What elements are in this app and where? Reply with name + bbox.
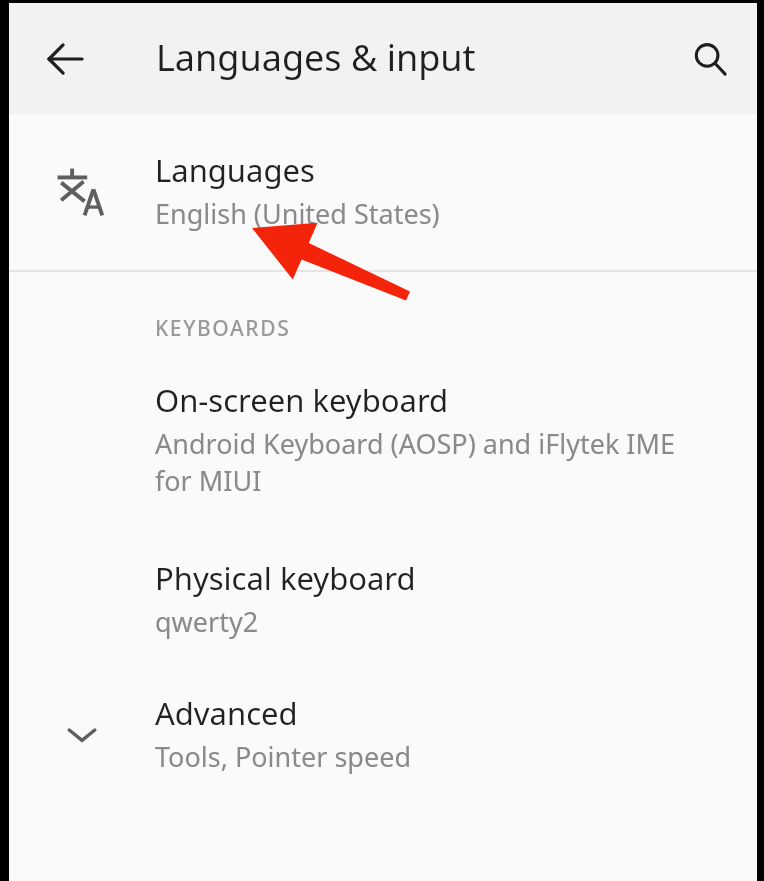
staticText: English (United States) — [155, 195, 440, 232]
staticText: Advanced — [155, 692, 298, 734]
button[interactable]: Back — [29, 23, 101, 95]
staticText: On-screen keyboard — [155, 379, 449, 421]
button[interactable]: Advanced — [9, 692, 757, 775]
staticText: Tools, Pointer speed — [155, 738, 412, 775]
button[interactable]: Languages — [9, 114, 757, 270]
staticText: Physical keyboard — [155, 557, 416, 599]
staticText: qwerty2 — [155, 603, 259, 640]
button[interactable]: Search — [677, 26, 743, 92]
staticText: Languages & input — [156, 33, 476, 82]
button[interactable]: On-screen keyboard — [9, 379, 757, 499]
button[interactable]: Physical keyboard — [9, 557, 757, 640]
staticText: KEYBOARDS — [155, 314, 291, 343]
staticText: Languages — [155, 149, 315, 191]
staticText: Android Keyboard (AOSP) and iFlytek IME … — [155, 425, 675, 499]
